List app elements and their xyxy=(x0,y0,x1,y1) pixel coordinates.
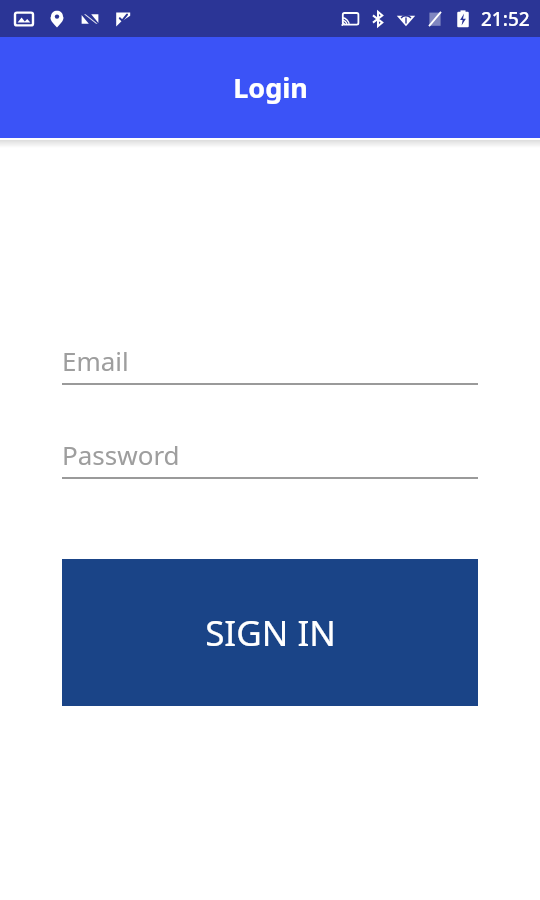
staticText: Email xyxy=(62,343,129,378)
staticText: Login xyxy=(233,69,308,106)
staticText: Password xyxy=(62,437,180,472)
button[interactable]: SIGN IN xyxy=(62,559,478,706)
staticText: 21:52 xyxy=(481,6,530,32)
button[interactable]: Password xyxy=(62,431,478,479)
button[interactable]: Email xyxy=(62,337,478,385)
staticText: SIGN IN xyxy=(205,609,336,657)
